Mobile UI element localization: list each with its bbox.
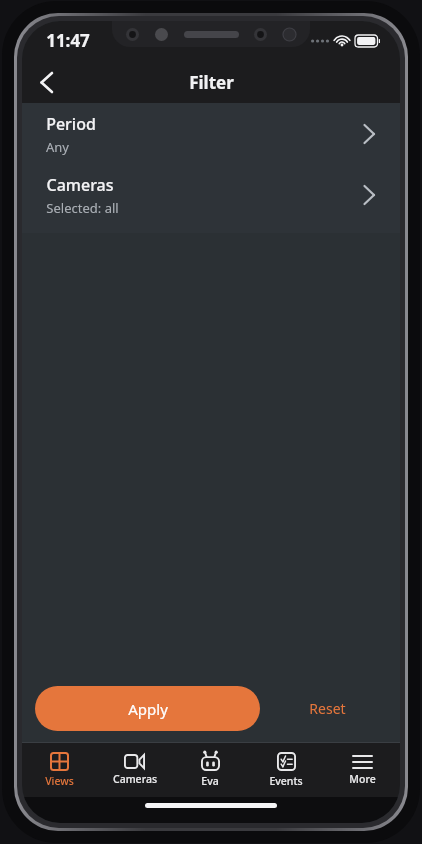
button[interactable]: Back [22,61,70,103]
staticText: Cameras [46,174,114,196]
staticText: More [349,772,376,786]
staticText: Period [46,113,96,135]
staticText: Reset [309,699,346,718]
staticText: Events [269,774,303,788]
staticText: Eva [201,774,219,788]
button[interactable]: More [324,743,400,797]
button[interactable]: Cameras [97,743,172,797]
button[interactable]: Reset [299,691,356,726]
staticText: Views [45,774,74,788]
staticText: Apply [128,699,168,719]
staticText: Selected: all [46,199,119,217]
button[interactable]: Period [22,103,400,164]
button[interactable]: Views [22,743,97,797]
staticText: 11:47 [46,29,90,52]
button[interactable]: Apply [35,686,260,731]
button[interactable]: Events [248,743,324,797]
staticText: Filter [189,71,234,94]
button[interactable]: Cameras [22,164,400,225]
staticText: Any [46,138,69,156]
staticText: Cameras [113,772,157,786]
button[interactable]: Eva [172,743,248,797]
